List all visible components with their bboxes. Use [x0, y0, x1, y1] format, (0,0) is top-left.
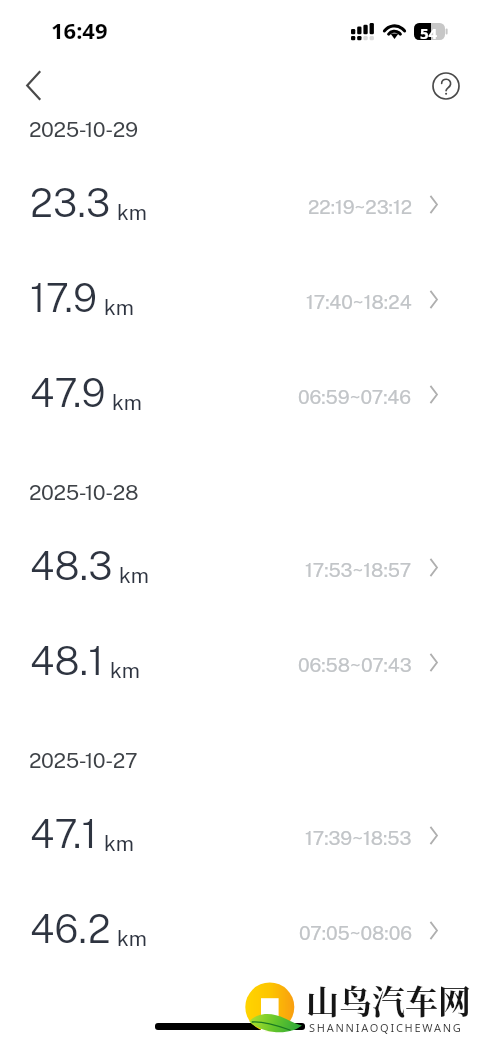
- staticText: 22:19~23:12: [308, 196, 412, 218]
- staticText: 48.3: [30, 543, 113, 589]
- staticText: 48.1: [30, 638, 104, 684]
- staticText: 山鸟汽车网: [306, 976, 471, 1023]
- staticText: 2025-10-28: [29, 480, 139, 505]
- staticText: 54: [420, 23, 438, 40]
- staticText: 17:53~18:57: [305, 559, 412, 581]
- staticText: km: [117, 926, 147, 951]
- button[interactable]: 23.3: [0, 155, 480, 250]
- staticText: 16:49: [51, 15, 108, 45]
- staticText: 06:58~07:43: [298, 654, 412, 676]
- staticText: 46.2: [30, 906, 111, 952]
- button[interactable]: 47.1: [0, 786, 480, 881]
- staticText: 2025-10-29: [29, 117, 138, 142]
- staticText: km: [117, 200, 147, 225]
- button[interactable]: Help: [424, 64, 467, 107]
- staticText: 07:05~08:06: [299, 922, 412, 944]
- staticText: km: [119, 563, 149, 588]
- button[interactable]: Back: [12, 64, 54, 106]
- staticText: 06:59~07:46: [298, 386, 412, 408]
- staticText: 2025-10-27: [29, 748, 138, 773]
- staticText: 17:40~18:24: [306, 291, 412, 313]
- staticText: 23.3: [30, 180, 111, 226]
- staticText: 17.9: [30, 275, 98, 321]
- button[interactable]: 47.9: [0, 345, 480, 440]
- staticText: 47.9: [30, 370, 106, 416]
- staticText: 47.1: [30, 811, 98, 857]
- button[interactable]: 17.9: [0, 250, 480, 345]
- staticText: km: [110, 658, 140, 683]
- staticText: km: [112, 390, 142, 415]
- button[interactable]: 48.1: [0, 613, 480, 708]
- button[interactable]: 48.3: [0, 518, 480, 613]
- staticText: 17:39~18:53: [305, 827, 412, 849]
- staticText: SHANNIAOQICHEWANG: [309, 1020, 463, 1035]
- button[interactable]: 46.2: [0, 881, 480, 976]
- staticText: km: [104, 831, 134, 856]
- staticText: km: [104, 295, 134, 320]
